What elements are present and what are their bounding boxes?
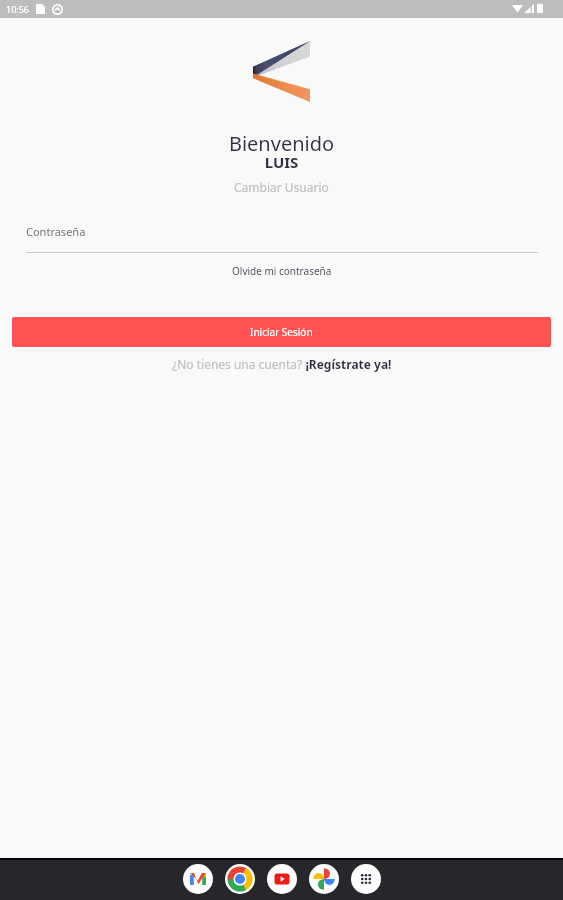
- button[interactable]: Gmail: [183, 864, 213, 894]
- staticText: LUIS: [0, 152, 563, 172]
- staticText: ¿No tienes una cuenta? ¡Regístrate ya!: [172, 356, 392, 372]
- button[interactable]: Olvide mi contraseña: [0, 262, 563, 280]
- button[interactable]: Chrome: [225, 864, 255, 894]
- button[interactable]: ¿No tienes una cuenta? ¡Regístrate ya!: [0, 354, 563, 374]
- staticText: 10:56: [6, 3, 30, 15]
- button[interactable]: All apps: [351, 864, 381, 894]
- staticText: Contraseña: [26, 224, 86, 239]
- button[interactable]: Google Photos: [309, 864, 339, 894]
- button[interactable]: Contraseña: [26, 219, 538, 253]
- staticText: Iniciar Sesión: [250, 325, 313, 339]
- button[interactable]: Iniciar Sesión: [12, 317, 551, 347]
- staticText: Bienvenido: [0, 130, 563, 157]
- button[interactable]: YouTube: [267, 864, 297, 894]
- staticText: Olvide mi contraseña: [232, 264, 332, 278]
- staticText: Cambiar Usuario: [234, 179, 329, 195]
- button[interactable]: Cambiar Usuario: [0, 178, 563, 196]
